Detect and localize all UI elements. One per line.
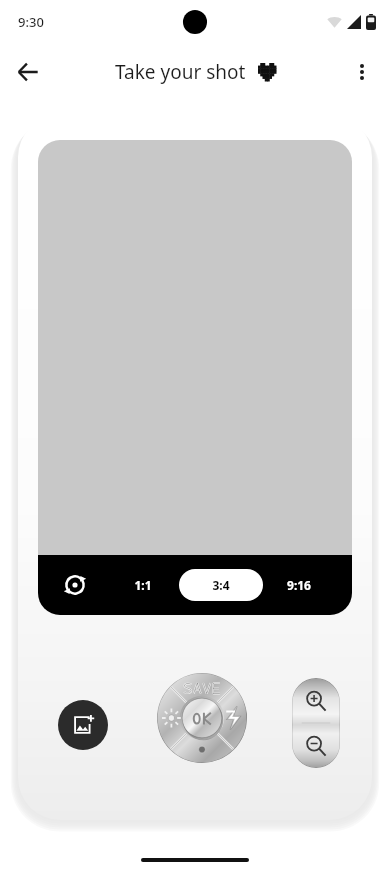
staticText: 9:30 bbox=[18, 13, 44, 31]
staticText: Take your shot bbox=[115, 59, 246, 85]
staticText: 9:16 bbox=[287, 577, 311, 593]
button[interactable]: More options bbox=[340, 50, 384, 94]
button[interactable]: Zoom in bbox=[292, 678, 340, 723]
button[interactable]: Directional pad bbox=[157, 673, 247, 763]
button[interactable]: Switch camera bbox=[58, 568, 92, 602]
button[interactable]: 3:4 bbox=[179, 569, 263, 601]
button[interactable]: Zoom out bbox=[292, 723, 340, 768]
button[interactable]: 9:16 bbox=[277, 569, 321, 601]
button[interactable]: 1:1 bbox=[121, 569, 165, 601]
button[interactable]: Back bbox=[4, 48, 52, 96]
staticText: 3:4 bbox=[212, 577, 230, 593]
button[interactable]: Open gallery bbox=[58, 700, 108, 750]
staticText: 1:1 bbox=[134, 577, 152, 593]
